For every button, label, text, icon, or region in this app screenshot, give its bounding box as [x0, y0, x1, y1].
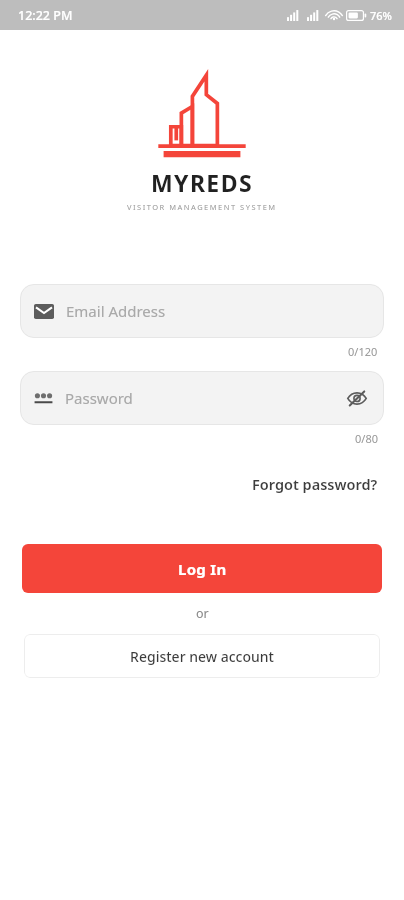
staticText: 0/120 — [348, 344, 378, 359]
staticText: 0/80 — [355, 431, 378, 446]
staticText: 76% — [370, 8, 392, 23]
staticText: 12:22 PM — [18, 7, 73, 24]
staticText: Log In — [178, 559, 227, 579]
button[interactable]: Log In — [22, 544, 382, 593]
staticText: or — [196, 605, 209, 622]
button[interactable]: Forgot password? — [248, 470, 382, 498]
staticText: Forgot password? — [252, 474, 378, 494]
staticText: VISITOR MANAGEMENT SYSTEM — [127, 202, 277, 212]
staticText: MYREDS — [151, 167, 253, 198]
button[interactable]: Email Address — [20, 284, 384, 338]
staticText: Email Address — [66, 301, 166, 321]
button[interactable]: Password — [20, 371, 384, 425]
button[interactable]: Register new account — [24, 634, 380, 678]
button[interactable]: Show password — [340, 381, 374, 415]
staticText: Register new account — [130, 647, 274, 666]
staticText: Password — [65, 388, 340, 408]
